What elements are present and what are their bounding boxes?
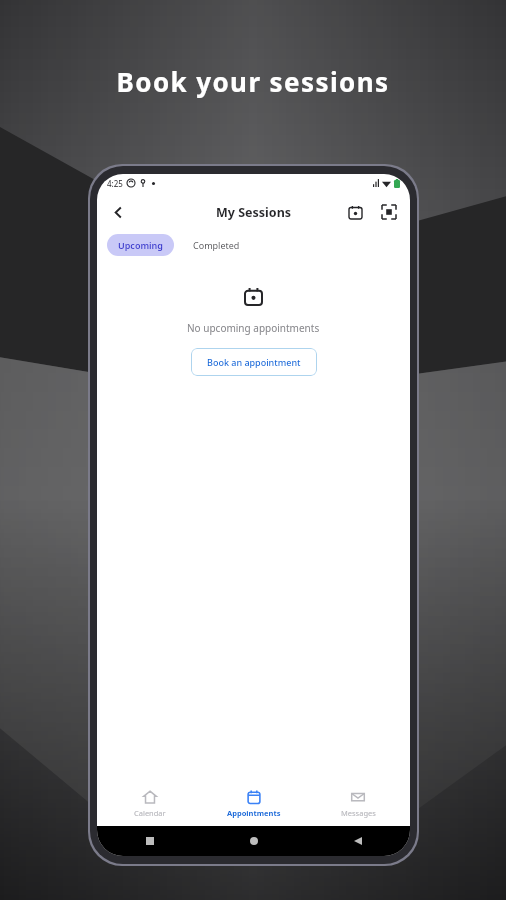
button[interactable]: Book an appointment (191, 348, 317, 376)
staticText: Book your sessions (0, 64, 506, 99)
staticText: Book an appointment (207, 356, 301, 368)
button[interactable]: Completed (182, 234, 251, 256)
button[interactable]: Scan (376, 199, 402, 225)
button[interactable]: Back (103, 197, 133, 227)
button[interactable]: Back (306, 826, 410, 856)
staticText: Completed (193, 239, 240, 251)
staticText: My Sessions (216, 204, 292, 221)
staticText: 4:25 (107, 178, 123, 189)
staticText: Upcoming (118, 239, 163, 251)
button[interactable]: Messages (306, 782, 410, 826)
button[interactable]: Recents (97, 826, 202, 856)
button[interactable]: Home (202, 826, 306, 856)
button[interactable]: Appointments (202, 782, 306, 826)
button[interactable]: Upcoming (107, 234, 174, 256)
staticText: Messages (341, 808, 376, 818)
staticText: No upcoming appointments (187, 321, 320, 335)
button[interactable]: Calendar (97, 782, 202, 826)
button[interactable]: Calendar (342, 199, 368, 225)
staticText: Appointments (227, 808, 281, 818)
staticText: Calendar (134, 808, 166, 818)
